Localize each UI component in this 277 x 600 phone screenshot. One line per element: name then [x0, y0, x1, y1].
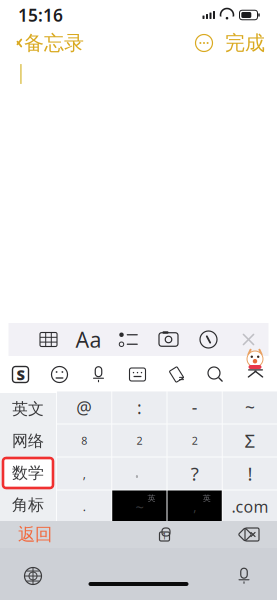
staticText: 备忘录: [24, 31, 84, 55]
staticText: 返回: [18, 524, 52, 545]
button[interactable]: ?: [167, 457, 222, 489]
button[interactable]: 数学: [0, 457, 56, 489]
button[interactable]: @: [57, 391, 111, 423]
button[interactable]: 搜索: [196, 356, 235, 393]
staticText: ~: [245, 396, 255, 419]
button[interactable]: !: [223, 457, 277, 489]
button[interactable]: 搜狗输入法: [1, 356, 40, 393]
staticText: Aa: [75, 325, 101, 354]
button[interactable]: 表格: [28, 323, 68, 355]
button[interactable]: 表情: [40, 356, 79, 393]
button[interactable]: .com: [223, 490, 277, 522]
staticText: :: [137, 396, 142, 419]
button[interactable]: :: [112, 391, 166, 423]
button[interactable]: 英文: [0, 393, 56, 425]
button[interactable]: -: [167, 391, 222, 423]
staticText: @: [76, 396, 92, 419]
button[interactable]: 网络: [0, 425, 56, 457]
staticText: .com: [231, 496, 268, 517]
staticText: Σ: [244, 428, 255, 453]
button[interactable]: ,: [57, 457, 111, 489]
staticText: 1: [162, 531, 167, 542]
staticText: .: [83, 498, 86, 514]
staticText: -: [192, 396, 198, 419]
button[interactable]: ~: [223, 391, 277, 423]
button[interactable]: 英: [167, 490, 222, 522]
staticText: ,: [193, 498, 196, 514]
button[interactable]: 。: [112, 457, 166, 489]
button[interactable]: 删除: [221, 521, 277, 548]
staticText: 完成: [225, 31, 265, 55]
staticText: 2: [192, 433, 198, 448]
button[interactable]: 关闭: [228, 323, 268, 355]
button[interactable]: 格式: [68, 323, 108, 355]
button[interactable]: 备忘录: [12, 27, 84, 59]
button[interactable]: 语音输入: [79, 356, 118, 393]
staticText: ?: [191, 461, 199, 486]
button[interactable]: 收起: [235, 356, 276, 393]
button[interactable]: 相机: [148, 323, 188, 355]
button[interactable]: 键盘: [118, 356, 157, 393]
button[interactable]: Σ: [223, 424, 277, 456]
staticText: ~: [135, 497, 143, 516]
staticText: 8: [81, 433, 87, 448]
staticText: 英文: [12, 399, 44, 419]
staticText: 数学: [12, 463, 44, 483]
button[interactable]: 切换键盘: [8, 559, 58, 593]
staticText: 网络: [12, 431, 44, 451]
staticText: S: [16, 365, 24, 384]
button[interactable]: .: [57, 490, 111, 522]
button[interactable]: 返回: [0, 521, 108, 548]
staticText: ,: [83, 465, 86, 481]
button[interactable]: 更多: [194, 33, 214, 53]
button[interactable]: 语音输入: [219, 559, 269, 593]
button[interactable]: 2: [112, 424, 166, 456]
button[interactable]: 角标: [0, 489, 56, 521]
staticText: !: [247, 461, 252, 486]
button[interactable]: 8: [57, 424, 111, 456]
staticText: 。: [135, 468, 144, 479]
staticText: 2: [136, 433, 142, 448]
button[interactable]: 清单: [108, 323, 148, 355]
button[interactable]: 锁定: [142, 521, 186, 548]
button[interactable]: 完成: [225, 27, 265, 59]
staticText: 英: [147, 493, 155, 503]
button[interactable]: 手写输入: [157, 356, 196, 393]
button[interactable]: 2: [167, 424, 222, 456]
staticText: 15:16: [18, 3, 63, 26]
staticText: 英: [203, 493, 211, 503]
staticText: 角标: [12, 495, 44, 515]
button[interactable]: 英: [112, 490, 166, 522]
button[interactable]: 手写: [188, 323, 228, 355]
